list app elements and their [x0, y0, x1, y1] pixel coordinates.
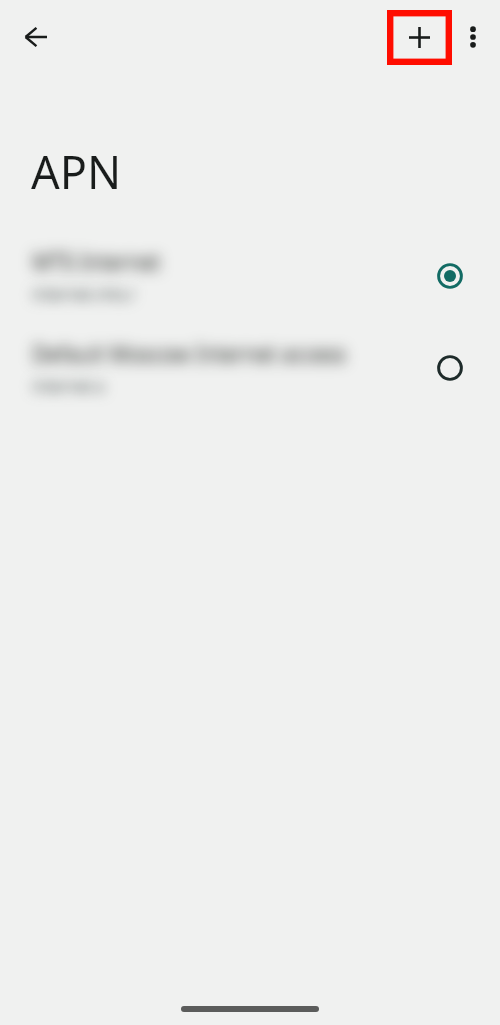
button[interactable]: MTS Internet	[0, 230, 500, 322]
button[interactable]: Selected APN	[400, 230, 500, 322]
staticText: internet.x	[32, 377, 105, 399]
staticText: MTS Internet	[32, 247, 161, 276]
button[interactable]: Select APN	[400, 322, 500, 414]
staticText: internet.mts.r	[32, 284, 136, 306]
staticText: Default Moscow Internet access	[32, 342, 346, 371]
staticText: APN	[31, 141, 122, 202]
staticText: internet.x	[32, 374, 105, 396]
button[interactable]: Navigate up	[12, 13, 60, 61]
staticText: internet.mts.r	[32, 281, 136, 303]
staticText: MTS Internet	[32, 246, 161, 275]
staticText: internet.x	[32, 373, 105, 395]
staticText: internet.mts.r	[32, 282, 136, 304]
button[interactable]: Default Moscow Internet access	[0, 322, 500, 414]
button[interactable]: More options	[449, 13, 497, 61]
staticText: internet.mts.r	[32, 285, 136, 307]
staticText: Default Moscow Internet access	[32, 341, 346, 370]
staticText: internet.x	[32, 376, 105, 398]
staticText: MTS Internet	[32, 250, 161, 279]
staticText: MTS Internet	[32, 249, 161, 278]
staticText: Default Moscow Internet access	[32, 339, 346, 368]
staticText: Default Moscow Internet access	[32, 338, 346, 367]
button[interactable]: Add APN	[387, 10, 452, 65]
